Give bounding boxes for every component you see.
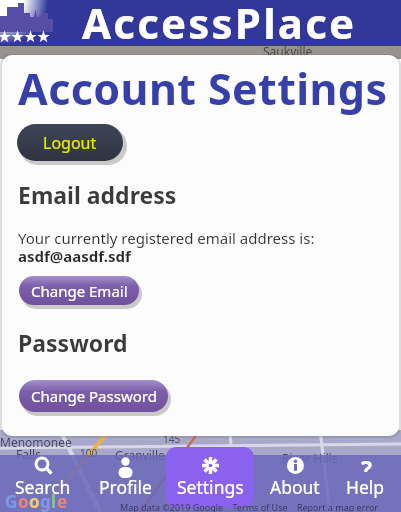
staticText: asdf@aasdf.sdf: [18, 246, 131, 266]
staticText: l: [51, 490, 57, 512]
button[interactable]: Change Password: [19, 380, 168, 412]
staticText: 100: [80, 446, 98, 460]
staticText: 145: [163, 432, 181, 446]
staticText: River Hills: [282, 450, 338, 466]
staticText: Menomonee: [0, 434, 72, 450]
button[interactable]: Change Email: [19, 276, 139, 305]
button[interactable]: ?: [330, 456, 401, 512]
staticText: Granville: [115, 447, 165, 463]
staticText: Falls: [16, 446, 41, 462]
staticText: g: [40, 490, 51, 512]
staticText: Profile: [99, 475, 152, 499]
button[interactable]: [166, 447, 254, 507]
staticText: Logout: [43, 132, 97, 154]
button[interactable]: Profile: [85, 456, 165, 512]
staticText: Settings: [177, 475, 244, 499]
staticText: Account Settings: [18, 59, 388, 118]
staticText: About: [270, 475, 320, 499]
staticText: Saukville: [263, 43, 313, 57]
button[interactable]: Settings: [170, 456, 250, 512]
staticText: Your currently registered email address …: [18, 228, 315, 248]
staticText: G: [5, 490, 18, 512]
staticText: Change Password: [31, 386, 157, 406]
staticText: e: [57, 490, 68, 512]
staticText: o: [29, 490, 40, 512]
staticText: Email address: [18, 179, 177, 210]
staticText: Change Email: [31, 281, 128, 301]
button[interactable]: Search: [3, 456, 83, 512]
staticText: Password: [18, 327, 128, 358]
staticText: Help: [346, 475, 385, 499]
staticText: Search: [15, 475, 71, 499]
button[interactable]: About: [255, 456, 335, 512]
button[interactable]: Logout: [17, 124, 123, 161]
staticText: Map data ©2019 Google Terms of Use Repor…: [120, 501, 379, 512]
staticText: AccessPlace: [82, 0, 357, 40]
staticText: o: [18, 490, 29, 512]
staticText: ?: [361, 453, 372, 472]
